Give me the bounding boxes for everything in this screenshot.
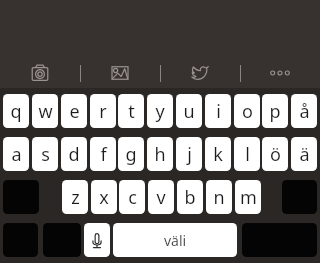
staticText: a <box>11 142 22 167</box>
button[interactable]: w <box>32 94 58 128</box>
staticText: ö <box>270 142 281 167</box>
staticText: k <box>213 142 223 167</box>
staticText: s <box>41 142 50 167</box>
staticText: y <box>155 99 165 124</box>
staticText: väli <box>164 231 187 250</box>
button[interactable]: Twitter <box>180 53 220 93</box>
button[interactable]: Shift <box>3 180 39 214</box>
staticText: w <box>38 99 53 124</box>
button[interactable]: k <box>205 137 231 171</box>
button[interactable]: Backspace <box>282 180 317 214</box>
button[interactable]: s <box>32 137 58 171</box>
button[interactable]: u <box>176 94 202 128</box>
staticText: q <box>10 99 22 124</box>
staticText: f <box>100 142 107 167</box>
staticText: b <box>184 185 196 210</box>
staticText: u <box>183 99 195 124</box>
staticText: c <box>128 185 137 210</box>
staticText: o <box>242 99 253 124</box>
button[interactable]: Camera <box>20 53 60 93</box>
staticText: h <box>154 142 166 167</box>
button[interactable]: j <box>176 137 202 171</box>
staticText: m <box>240 185 257 210</box>
button[interactable]: ö <box>262 137 288 171</box>
button[interactable]: d <box>61 137 87 171</box>
button[interactable]: g <box>118 137 144 171</box>
button[interactable]: f <box>90 137 116 171</box>
button[interactable]: z <box>62 180 88 214</box>
staticText: å <box>299 99 310 124</box>
button[interactable]: y <box>147 94 173 128</box>
staticText: ä <box>299 142 310 167</box>
button[interactable]: x <box>91 180 117 214</box>
staticText: r <box>99 99 107 124</box>
button[interactable]: a <box>3 137 29 171</box>
button[interactable]: väli <box>113 223 237 257</box>
button[interactable]: i <box>205 94 231 128</box>
button[interactable]: Photo gallery <box>100 53 140 93</box>
button[interactable]: q <box>3 94 29 128</box>
staticText: n <box>213 185 225 210</box>
staticText: l <box>245 142 250 167</box>
button[interactable]: Emoji <box>43 223 81 257</box>
button[interactable]: m <box>235 180 261 214</box>
button[interactable]: h <box>147 137 173 171</box>
staticText: x <box>99 185 109 210</box>
staticText: g <box>125 142 137 167</box>
button[interactable]: l <box>234 137 260 171</box>
button[interactable]: å <box>291 94 317 128</box>
button[interactable]: r <box>90 94 116 128</box>
button[interactable]: More options <box>260 53 300 93</box>
button[interactable]: n <box>206 180 232 214</box>
staticText: p <box>269 99 281 124</box>
staticText: i <box>216 99 221 124</box>
button[interactable]: e <box>61 94 87 128</box>
staticText: v <box>156 185 166 210</box>
staticText: d <box>68 142 80 167</box>
staticText: e <box>69 99 80 124</box>
button[interactable]: v <box>148 180 174 214</box>
button[interactable]: Voice input <box>84 223 110 257</box>
button[interactable]: ä <box>291 137 317 171</box>
button[interactable]: p <box>262 94 288 128</box>
button[interactable]: Symbols <box>3 223 38 257</box>
button[interactable]: c <box>119 180 145 214</box>
button[interactable]: b <box>177 180 203 214</box>
staticText: j <box>187 142 192 167</box>
staticText: z <box>71 185 80 210</box>
staticText: t <box>128 99 135 124</box>
button[interactable]: t <box>118 94 144 128</box>
button[interactable]: o <box>234 94 260 128</box>
